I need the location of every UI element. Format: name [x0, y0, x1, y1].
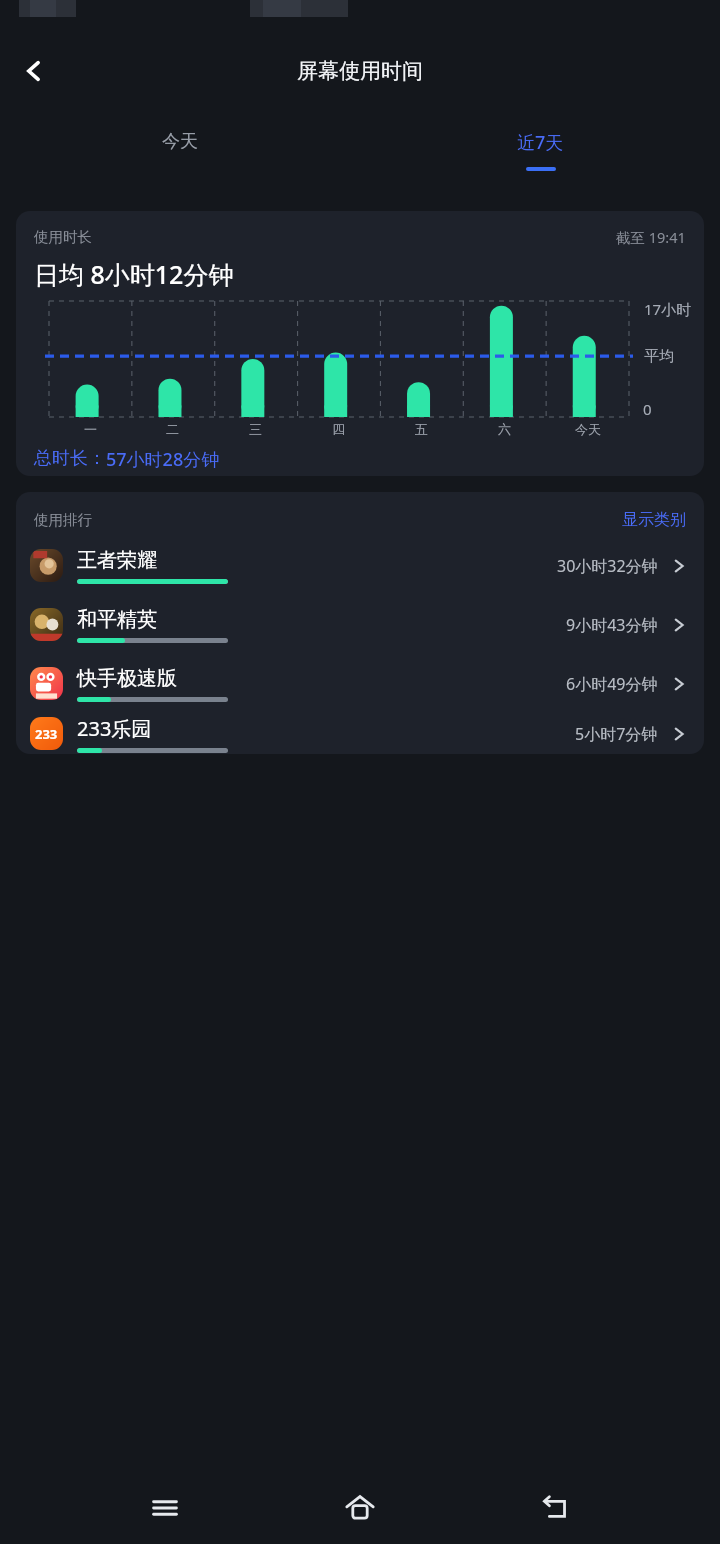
- button[interactable]: Home: [330, 1478, 390, 1538]
- other: Details: [670, 557, 688, 575]
- other: Details: [670, 675, 688, 693]
- staticText: 30小时32分钟: [557, 555, 658, 577]
- staticText: 6小时49分钟: [566, 673, 658, 695]
- staticText: 五: [415, 421, 428, 437]
- staticText: 233: [35, 725, 58, 743]
- staticText: 5小时7分钟: [575, 723, 658, 745]
- staticText: 17小时: [644, 299, 692, 319]
- staticText: 今天: [162, 130, 198, 153]
- staticText: 233乐园: [77, 715, 152, 742]
- staticText: 屏幕使用时间: [297, 58, 423, 84]
- staticText: 57小时28分钟: [106, 447, 220, 472]
- button[interactable]: 今天: [0, 118, 360, 193]
- staticText: 四: [332, 421, 345, 437]
- button[interactable]: Back: [525, 1478, 585, 1538]
- staticText: 快手极速版: [77, 666, 177, 691]
- staticText: 使用时长: [34, 228, 92, 246]
- staticText: 平均: [644, 347, 674, 366]
- button[interactable]: 王者荣耀: [16, 536, 704, 595]
- other: Details: [670, 616, 688, 634]
- staticText: 一: [84, 421, 97, 437]
- staticText: 0: [643, 399, 652, 419]
- button[interactable]: 233: [16, 713, 704, 754]
- staticText: 三: [249, 421, 262, 437]
- button[interactable]: 和平精英: [16, 595, 704, 654]
- staticText: 截至 19:41: [616, 227, 686, 247]
- staticText: 二: [166, 421, 179, 437]
- staticText: 和平精英: [77, 607, 157, 632]
- staticText: 显示类别: [622, 510, 686, 530]
- staticText: 今天: [575, 421, 601, 437]
- staticText: 使用排行: [34, 511, 92, 529]
- staticText: 9小时43分钟: [566, 614, 658, 636]
- button[interactable]: Recent apps: [135, 1478, 195, 1538]
- button[interactable]: Back: [8, 45, 60, 97]
- staticText: 日均 8小时12分钟: [34, 257, 234, 291]
- button[interactable]: 显示类别: [622, 510, 686, 530]
- staticText: 王者荣耀: [77, 548, 157, 573]
- other: Details: [670, 725, 688, 743]
- staticText: 近7天: [517, 130, 564, 155]
- staticText: 总时长：: [34, 447, 106, 470]
- button[interactable]: 近7天: [360, 118, 720, 193]
- staticText: 六: [498, 421, 511, 437]
- button[interactable]: 快手极速版: [16, 654, 704, 713]
